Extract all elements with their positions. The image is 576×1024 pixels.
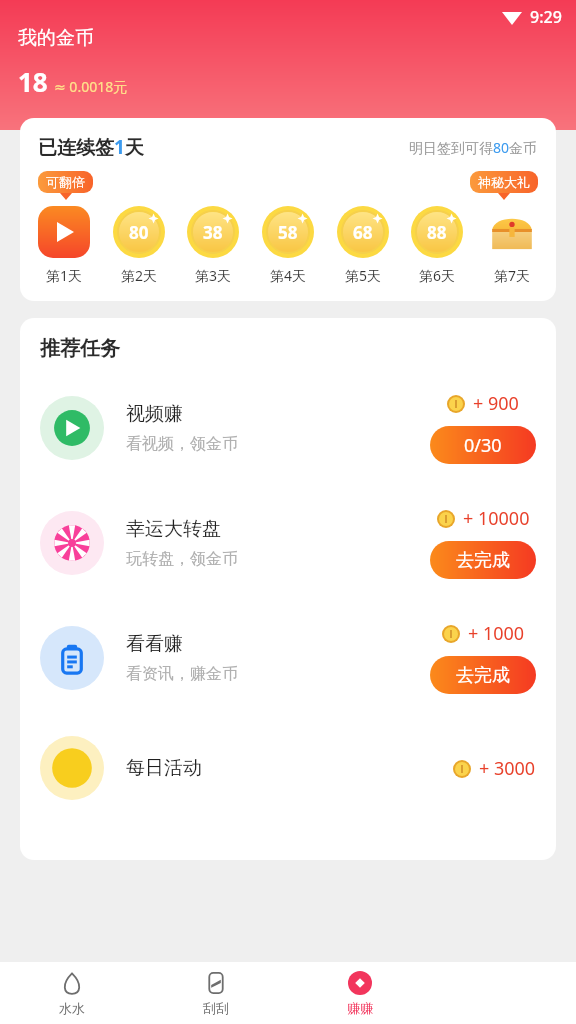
button[interactable]: 刮刮 <box>144 962 288 1024</box>
staticText: 我的金币 <box>18 26 94 50</box>
staticText: 68 <box>353 221 373 244</box>
staticText: 58 <box>278 221 298 244</box>
staticText: 9:29 <box>530 6 562 28</box>
staticText: + 10000 <box>463 506 530 531</box>
button[interactable]: 68 <box>337 206 389 285</box>
staticText: 第2天 <box>121 266 158 285</box>
staticText: 38 <box>203 221 223 244</box>
staticText: 第5天 <box>345 266 382 285</box>
staticText: 水水 <box>59 1000 85 1016</box>
button[interactable]: 第7天 <box>486 206 538 285</box>
staticText: 每日活动 <box>126 756 202 780</box>
button[interactable]: 0/30 <box>430 426 536 464</box>
staticText: 已连续签1天 <box>38 134 144 160</box>
staticText: 第7天 <box>494 266 531 285</box>
staticText: 刮刮 <box>203 1000 229 1016</box>
button[interactable]: 幸运大转盘 <box>40 506 536 579</box>
staticText: 0/30 <box>464 433 502 458</box>
staticText: 去完成 <box>456 664 510 687</box>
button[interactable]: 去完成 <box>430 541 536 579</box>
button[interactable]: 80 <box>113 206 165 285</box>
staticText: 明日签到可得80金币 <box>409 138 538 157</box>
staticText: 第1天 <box>46 266 83 285</box>
staticText: 幸运大转盘 <box>126 517 221 541</box>
staticText: 可翻倍 <box>46 174 85 190</box>
button[interactable]: 38 <box>187 206 239 285</box>
staticText: 第4天 <box>270 266 307 285</box>
staticText: 赚赚 <box>347 1000 373 1016</box>
button[interactable]: 看看赚 <box>40 621 536 694</box>
button[interactable]: 58 <box>262 206 314 285</box>
button[interactable]: 第1天 <box>38 206 90 285</box>
staticText: + 1000 <box>468 621 525 646</box>
staticText: 看资讯，赚金币 <box>126 664 238 684</box>
staticText: 看看赚 <box>126 632 183 656</box>
staticText: 88 <box>427 221 447 244</box>
staticText: + 900 <box>473 391 519 416</box>
staticText: 推荐任务 <box>40 336 120 361</box>
staticText: 第6天 <box>419 266 456 285</box>
staticText: 去完成 <box>456 549 510 572</box>
staticText: ≈ 0.0018元 <box>54 77 128 96</box>
staticText: 玩转盘，领金币 <box>126 549 238 569</box>
staticText: 神秘大礼 <box>478 174 530 190</box>
staticText: + 3000 <box>479 756 536 781</box>
staticText: 看视频，领金币 <box>126 434 238 454</box>
button[interactable]: 赚赚 <box>288 962 432 1024</box>
button[interactable]: 去完成 <box>430 656 536 694</box>
button[interactable]: 每日活动 <box>40 736 536 800</box>
button[interactable]: 88 <box>411 206 463 285</box>
staticText: 视频赚 <box>126 402 183 426</box>
button[interactable]: 水水 <box>0 962 144 1024</box>
staticText: 80 <box>129 221 149 244</box>
button[interactable]: 视频赚 <box>40 391 536 464</box>
staticText: 18 <box>18 64 48 99</box>
staticText: 第3天 <box>195 266 232 285</box>
